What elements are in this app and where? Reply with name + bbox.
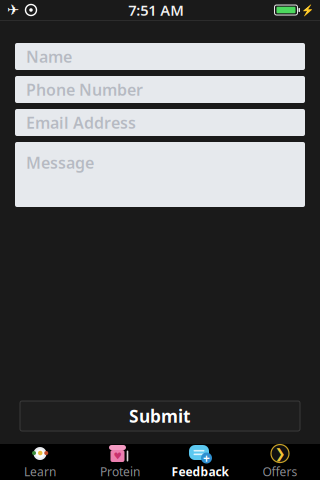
- button[interactable]: Name: [15, 43, 305, 70]
- staticText: Message: [26, 152, 94, 173]
- staticText: +: [203, 450, 210, 466]
- button[interactable]: +: [160, 444, 240, 480]
- staticText: Protein: [100, 463, 140, 479]
- staticText: 7:51 AM: [128, 0, 184, 20]
- staticText: Learn: [24, 463, 56, 479]
- staticText: Feedback: [171, 463, 228, 479]
- button[interactable]: Message: [15, 142, 305, 207]
- staticText: ⚡: [301, 4, 314, 16]
- staticText: ♥: [113, 451, 121, 461]
- button[interactable]: Learn: [0, 444, 80, 480]
- staticText: ✈: [7, 2, 19, 18]
- staticText: Submit: [129, 404, 191, 427]
- staticText: Email Address: [26, 112, 136, 133]
- button[interactable]: Phone Number: [15, 76, 305, 103]
- staticText: Offers: [262, 463, 297, 479]
- button[interactable]: Email Address: [15, 109, 305, 136]
- staticText: Name: [26, 46, 72, 67]
- button[interactable]: ♥: [80, 444, 160, 480]
- staticText: ❯: [274, 446, 285, 461]
- staticText: Phone Number: [26, 79, 143, 100]
- button[interactable]: ❯: [240, 444, 320, 480]
- button[interactable]: Submit: [20, 401, 300, 431]
